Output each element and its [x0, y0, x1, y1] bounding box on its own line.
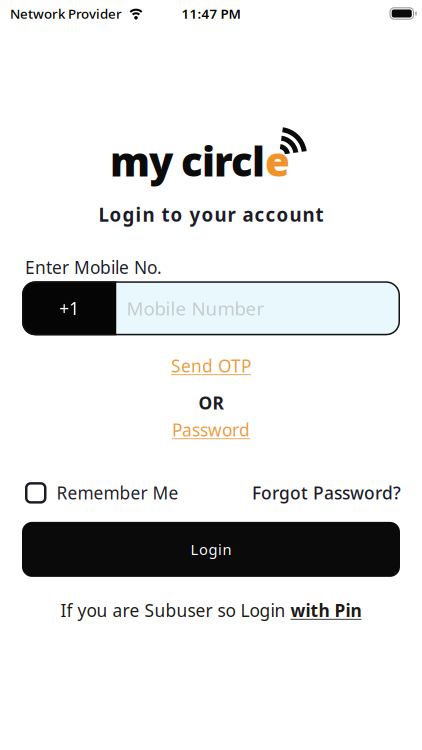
button[interactable]: Login [22, 522, 400, 577]
staticText: Remember Me [56, 481, 178, 504]
staticText: Enter Mobile No. [25, 256, 162, 279]
staticText: +1 [59, 297, 79, 320]
staticText: Forgot Password? [252, 481, 401, 504]
staticText: Network Provider [10, 5, 122, 22]
staticText: Mobile Number [126, 296, 264, 321]
staticText: If you are Subuser so Login with Pin [60, 599, 361, 622]
staticText: my circl [110, 134, 265, 187]
button[interactable]: Send OTP [171, 354, 251, 377]
staticText: 11:47 PM [181, 5, 240, 22]
staticText: Login to your account [98, 202, 323, 227]
staticText: Send OTP [171, 354, 251, 377]
button[interactable]: Remember Me [25, 481, 178, 504]
button[interactable]: Password [172, 418, 250, 441]
staticText: Password [172, 418, 250, 441]
staticText: OR [198, 391, 223, 414]
staticText: Login [190, 540, 231, 559]
button[interactable]: If you are Subuser so Login with Pin [60, 599, 361, 622]
staticText: e [265, 134, 290, 187]
button[interactable]: Forgot Password? [252, 481, 401, 504]
